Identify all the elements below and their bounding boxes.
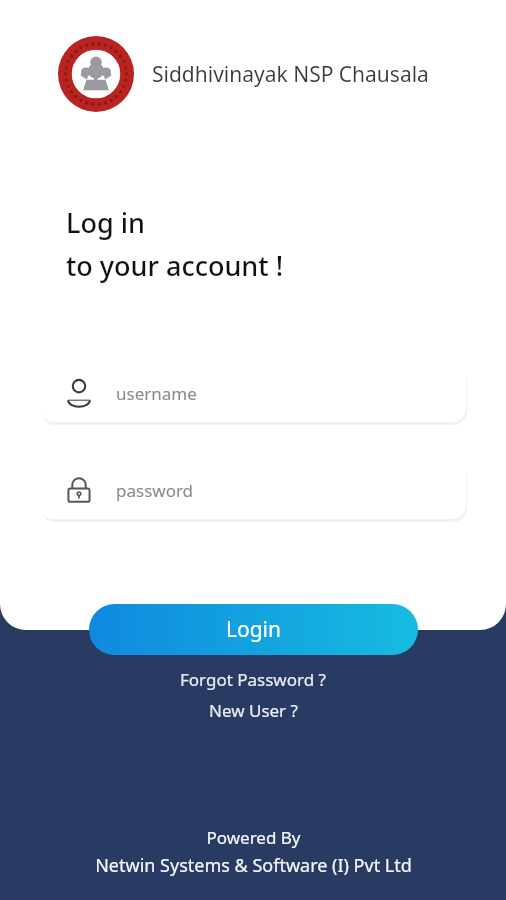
staticText: Siddhivinayak NSP Chausala xyxy=(152,60,429,89)
staticText: New User ? xyxy=(209,699,298,722)
button[interactable]: Password xyxy=(40,461,466,519)
other: Username xyxy=(63,377,95,409)
staticText: username xyxy=(116,382,197,405)
button[interactable]: Forgot Password ? xyxy=(170,666,336,693)
staticText: Forgot Password ? xyxy=(180,668,326,691)
staticText: password xyxy=(116,479,194,502)
staticText: Login xyxy=(226,615,282,644)
button[interactable]: Login xyxy=(89,604,418,655)
other: Organisation logo xyxy=(58,36,134,112)
button[interactable]: Username xyxy=(40,364,466,422)
staticText: Netwin Systems & Software (I) Pvt Ltd xyxy=(95,853,412,878)
staticText: to your account ! xyxy=(66,247,284,284)
staticText: Log in xyxy=(66,204,145,241)
button[interactable]: New User ? xyxy=(199,697,308,724)
staticText: Powered By xyxy=(206,826,301,849)
other: Password xyxy=(63,474,95,506)
